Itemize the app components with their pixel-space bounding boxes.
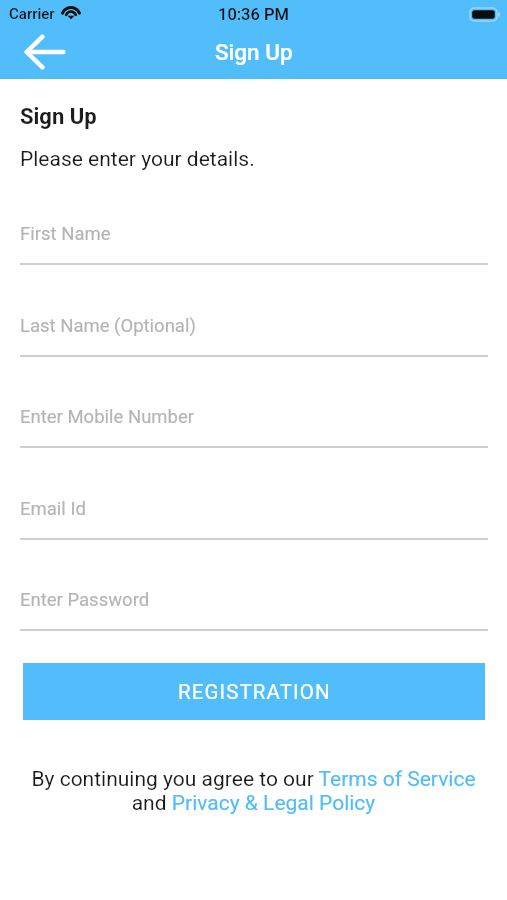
button[interactable]: Terms of Service bbox=[317, 765, 476, 790]
staticText: Email Id bbox=[20, 498, 86, 520]
staticText: Sign Up bbox=[20, 104, 97, 130]
button[interactable]: Privacy & Legal Policy bbox=[171, 790, 376, 815]
button[interactable]: First Name bbox=[20, 199, 488, 265]
staticText: Enter Password bbox=[20, 589, 150, 611]
staticText: REGISTRATION bbox=[178, 680, 331, 704]
button[interactable]: Back bbox=[6, 28, 80, 79]
staticText: Last Name (Optional) bbox=[20, 315, 196, 337]
staticText: Please enter your details. bbox=[20, 147, 255, 172]
button[interactable]: Enter Mobile Number bbox=[20, 382, 488, 448]
staticText: First Name bbox=[20, 223, 111, 245]
button[interactable]: REGISTRATION bbox=[23, 663, 485, 720]
staticText: Sign Up bbox=[215, 39, 293, 65]
button[interactable]: Enter Password bbox=[20, 565, 488, 631]
staticText: Carrier bbox=[9, 5, 55, 23]
button[interactable]: Email Id bbox=[20, 474, 488, 540]
button[interactable]: Last Name (Optional) bbox=[20, 291, 488, 357]
staticText: Enter Mobile Number bbox=[20, 406, 195, 428]
staticText: 10:36 PM bbox=[218, 5, 289, 24]
staticText: By continuing you agree to our Terms of … bbox=[16, 767, 491, 815]
